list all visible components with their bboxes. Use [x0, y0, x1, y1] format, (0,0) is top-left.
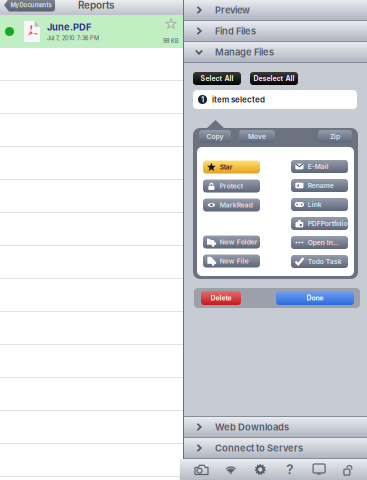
staticText: Preview	[215, 4, 250, 16]
staticText: Move	[248, 132, 266, 141]
staticText: PDFPortfolio	[308, 219, 348, 228]
staticText: Connect to Servers	[215, 442, 303, 454]
button[interactable]: My Documents	[4, 0, 55, 11]
staticText: Delete	[210, 294, 231, 302]
staticText: June.PDF	[47, 21, 91, 33]
button[interactable]: MarkRead	[203, 198, 260, 211]
button[interactable]: Rename	[291, 179, 348, 192]
button[interactable]: June.PDF	[0, 15, 183, 48]
button[interactable]: New Folder	[203, 235, 260, 248]
staticText: Select All	[200, 74, 233, 83]
staticText: Web Downloads	[215, 421, 289, 433]
staticText: Manage Files	[215, 46, 274, 58]
staticText: Rename	[308, 181, 334, 190]
button[interactable]: Copy	[199, 130, 231, 143]
staticText: MarkRead	[220, 201, 253, 209]
button[interactable]: Settings	[246, 459, 275, 480]
staticText: Deselect All	[253, 74, 294, 83]
staticText: Zip	[330, 132, 340, 141]
staticText: Protect	[220, 182, 243, 190]
staticText: Reports	[78, 0, 114, 11]
button[interactable]: Protect	[203, 179, 260, 192]
staticText: 1	[201, 95, 204, 104]
button[interactable]: Manage Files	[184, 42, 367, 62]
staticText: New File	[220, 257, 249, 265]
button[interactable]: Todo Task	[291, 255, 348, 268]
button[interactable]: Camera	[187, 459, 216, 480]
staticText: E-Mail	[308, 162, 329, 171]
staticText: Jul 7, 2010 7:36 PM	[47, 35, 99, 42]
staticText: Open In...	[308, 238, 339, 247]
button[interactable]: New File	[203, 254, 260, 267]
staticText: Done	[306, 294, 323, 302]
staticText: 98 KB	[163, 38, 179, 44]
staticText: New Folder	[220, 238, 258, 246]
button[interactable]: Star	[203, 160, 260, 173]
button[interactable]: Web Downloads	[184, 417, 367, 437]
button[interactable]: Move	[239, 130, 275, 143]
button[interactable]: Link	[291, 198, 348, 211]
button[interactable]: Preview	[184, 0, 367, 20]
button[interactable]: Wi-Fi	[216, 459, 246, 480]
button[interactable]: Zip	[318, 130, 352, 143]
button[interactable]: Find Files	[184, 21, 367, 41]
button[interactable]: E-Mail	[291, 160, 348, 173]
button[interactable]: PDFPortfolio	[291, 217, 348, 230]
button[interactable]: Deselect All	[250, 72, 298, 85]
staticText: Link	[308, 200, 322, 209]
button[interactable]: Lock	[334, 459, 363, 480]
button[interactable]: Display	[304, 459, 334, 480]
staticText: item selected	[212, 95, 265, 104]
staticText: Todo Task	[308, 257, 342, 266]
staticText: Star	[220, 163, 233, 171]
staticText: My Documents	[10, 1, 51, 9]
button[interactable]: Connect to Servers	[184, 438, 367, 458]
button[interactable]: Help	[275, 459, 304, 480]
staticText: Copy	[206, 132, 223, 141]
button[interactable]: Delete	[201, 291, 241, 305]
staticText: Find Files	[215, 25, 256, 37]
button[interactable]: Open In...	[291, 236, 348, 249]
staticText: ?	[286, 461, 293, 477]
button[interactable]: Select All	[193, 72, 241, 85]
button[interactable]: Done	[276, 291, 354, 305]
